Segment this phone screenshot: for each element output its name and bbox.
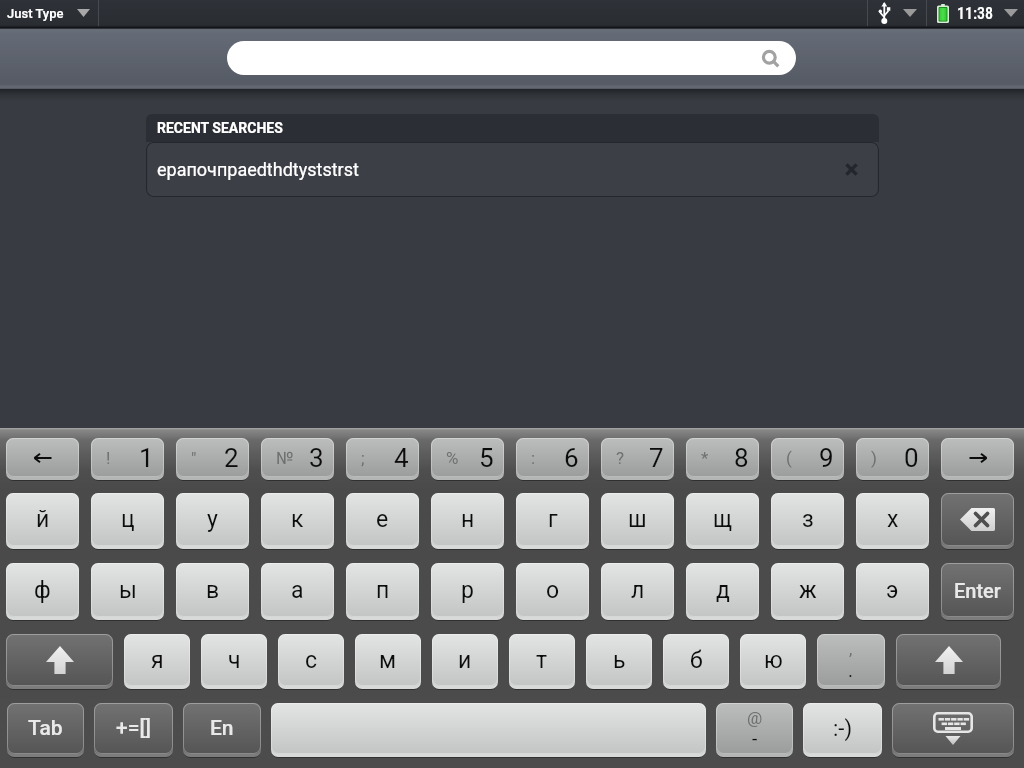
button[interactable]: м: [355, 634, 421, 689]
button[interactable]: л: [601, 563, 674, 620]
button[interactable]: ерапочпраedthdtyststrst: [146, 142, 879, 197]
button[interactable]: у: [176, 493, 249, 549]
staticText: е: [376, 506, 389, 533]
button[interactable]: х: [856, 493, 929, 549]
staticText: (: [786, 448, 792, 468]
button[interactable]: щ: [686, 493, 759, 549]
button[interactable]: к: [261, 493, 334, 549]
button[interactable]: Search: [227, 41, 796, 75]
button[interactable]: %: [431, 438, 504, 480]
staticText: 3: [309, 443, 324, 473]
button[interactable]: й: [6, 493, 79, 549]
staticText: р: [461, 577, 474, 604]
staticText: д: [716, 577, 730, 604]
button[interactable]: Remove search: [824, 142, 879, 197]
button[interactable]: ф: [6, 563, 79, 620]
staticText: 2: [224, 443, 239, 473]
button[interactable]: ю: [740, 634, 806, 689]
staticText: э: [886, 577, 899, 604]
button[interactable]: е: [346, 493, 419, 549]
button[interactable]: з: [771, 493, 844, 549]
button[interactable]: и: [432, 634, 498, 689]
staticText: ы: [119, 577, 137, 604]
staticText: :-): [833, 716, 853, 742]
staticText: з: [802, 506, 814, 533]
staticText: г: [548, 506, 558, 533]
button[interactable]: ": [176, 438, 249, 480]
staticText: н: [461, 506, 475, 533]
button[interactable]: Hide keyboard: [892, 703, 1014, 757]
button[interactable]: Tab: [7, 703, 84, 757]
button[interactable]: :: [516, 438, 589, 480]
staticText: я: [151, 647, 164, 674]
button[interactable]: *: [686, 438, 759, 480]
button[interactable]: 11:38: [926, 0, 1024, 26]
staticText: т: [536, 647, 548, 674]
button[interactable]: Forward: [941, 438, 1014, 480]
staticText: у: [207, 506, 218, 533]
staticText: RECENT SEARCHES: [157, 120, 283, 136]
button[interactable]: Enter: [941, 563, 1014, 620]
staticText: №: [276, 448, 294, 468]
staticText: :: [531, 448, 536, 468]
button[interactable]: (: [771, 438, 844, 480]
button[interactable]: с: [278, 634, 344, 689]
button[interactable]: а: [261, 563, 334, 620]
button[interactable]: USB connected: [867, 0, 926, 26]
button[interactable]: п: [346, 563, 419, 620]
button[interactable]: д: [686, 563, 759, 620]
button[interactable]: н: [431, 493, 504, 549]
button[interactable]: ш: [601, 493, 674, 549]
button[interactable]: я: [124, 634, 190, 689]
button[interactable]: Backspace: [941, 493, 1014, 549]
staticText: *: [701, 448, 709, 468]
button[interactable]: г: [516, 493, 589, 549]
button[interactable]: @: [716, 703, 793, 757]
staticText: 5: [479, 443, 494, 473]
staticText: к: [291, 506, 304, 533]
button[interactable]: в: [176, 563, 249, 620]
button[interactable]: [271, 703, 706, 757]
button[interactable]: т: [509, 634, 575, 689]
button[interactable]: б: [663, 634, 729, 689]
button[interactable]: ц: [91, 493, 164, 549]
button[interactable]: о: [516, 563, 589, 620]
button[interactable]: Shift: [6, 634, 113, 689]
staticText: 6: [564, 443, 579, 473]
staticText: в: [206, 577, 220, 604]
staticText: м: [379, 647, 397, 674]
button[interactable]: Shift: [896, 634, 1001, 689]
staticText: ;: [361, 448, 365, 468]
staticText: ц: [121, 506, 135, 533]
button[interactable]: Backward: [6, 438, 79, 480]
staticText: ь: [613, 647, 626, 674]
button[interactable]: ы: [91, 563, 164, 620]
button[interactable]: ж: [771, 563, 844, 620]
staticText: ": [191, 448, 197, 468]
staticText: ф: [34, 577, 51, 604]
staticText: 4: [394, 443, 409, 473]
staticText: +=[]: [116, 716, 151, 741]
button[interactable]: +=[]: [94, 703, 173, 757]
staticText: @: [747, 708, 763, 728]
staticText: ю: [764, 647, 783, 674]
button[interactable]: ?: [601, 438, 674, 480]
button[interactable]: ;: [346, 438, 419, 480]
staticText: о: [546, 577, 560, 604]
button[interactable]: р: [431, 563, 504, 620]
button[interactable]: э: [856, 563, 929, 620]
staticText: с: [305, 647, 318, 674]
button[interactable]: ,: [817, 634, 885, 689]
button[interactable]: En: [183, 703, 261, 757]
button[interactable]: Just Type: [0, 0, 98, 26]
staticText: ж: [799, 577, 817, 604]
button[interactable]: ч: [201, 634, 267, 689]
button[interactable]: №: [261, 438, 334, 480]
button[interactable]: ): [856, 438, 929, 480]
button[interactable]: ь: [586, 634, 652, 689]
button[interactable]: :-): [803, 703, 882, 757]
staticText: !: [106, 448, 111, 468]
button[interactable]: !: [91, 438, 164, 480]
staticText: -: [752, 727, 758, 749]
staticText: En: [210, 716, 234, 741]
